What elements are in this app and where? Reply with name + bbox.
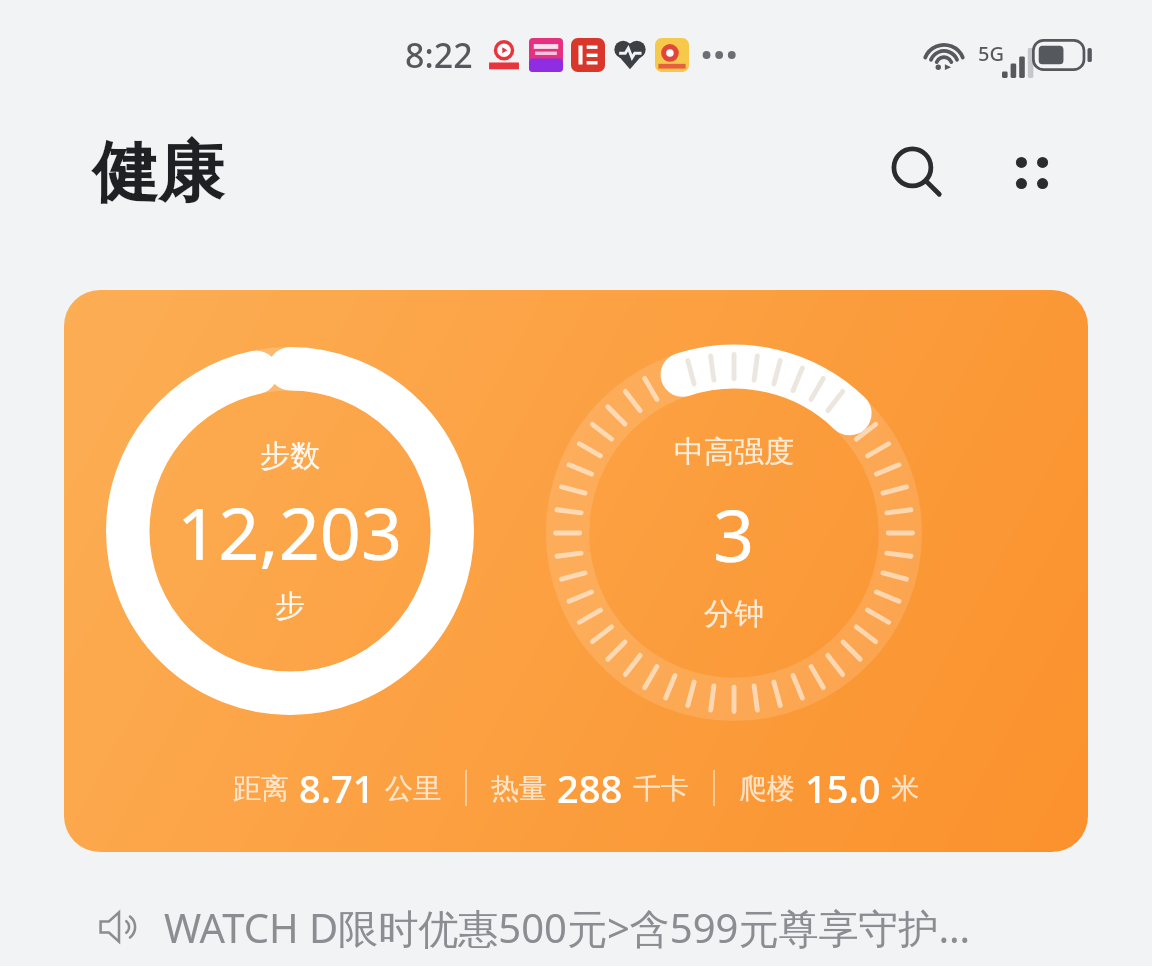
staticText: 千卡 bbox=[633, 771, 689, 806]
button[interactable]: More options bbox=[990, 131, 1074, 215]
staticText: 3 bbox=[713, 485, 755, 583]
staticText: 8.71 bbox=[299, 762, 375, 814]
button[interactable]: Search bbox=[876, 131, 960, 215]
staticText: 热量 bbox=[491, 771, 547, 806]
staticText: 15.0 bbox=[805, 762, 881, 814]
button[interactable]: 步数 bbox=[64, 290, 1088, 852]
staticText: 公里 bbox=[385, 771, 441, 806]
staticText: 8:22 bbox=[405, 32, 473, 78]
staticText: 米 bbox=[891, 771, 919, 806]
staticText: 距离 bbox=[233, 771, 289, 806]
staticText: 爬楼 bbox=[739, 771, 795, 806]
staticText: 12,203 bbox=[177, 483, 403, 581]
button[interactable]: Announcement bbox=[96, 892, 1112, 962]
staticText: 健康 bbox=[92, 131, 224, 214]
staticText: 步 bbox=[275, 587, 305, 625]
other: Announcement bbox=[96, 904, 142, 950]
staticText: 5G bbox=[978, 40, 1004, 67]
staticText: 288 bbox=[557, 762, 623, 814]
staticText: WATCH D限时优惠500元>含599元尊享守护… bbox=[164, 900, 1112, 955]
staticText: 分钟 bbox=[704, 595, 764, 633]
staticText: 中高强度 bbox=[674, 433, 794, 471]
staticText: 步数 bbox=[260, 437, 320, 475]
